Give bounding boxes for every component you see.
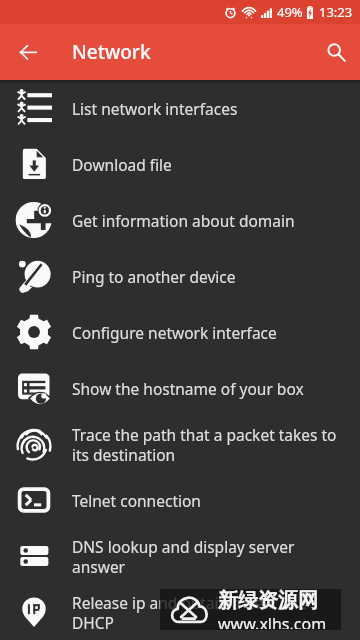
staticText: 13:23 <box>319 3 353 21</box>
staticText: 新绿资源网 <box>218 588 318 613</box>
staticText: Telnet connection <box>72 490 201 511</box>
staticText: 49% <box>277 3 303 21</box>
button[interactable]: Ping to another device <box>0 248 360 304</box>
button[interactable]: Get information about domain <box>0 192 360 248</box>
button[interactable]: Telnet connection <box>0 472 360 528</box>
button[interactable]: Search <box>312 28 360 76</box>
staticText: www.xlhs.com <box>218 613 327 629</box>
button[interactable]: Trace the path that a packet takes to it… <box>0 416 360 472</box>
button[interactable]: Release ip and obtain a new one DHCP <box>0 584 360 640</box>
button[interactable]: DNS lookup and display server answer <box>0 528 360 584</box>
staticText: Network <box>72 39 151 65</box>
button[interactable]: Download file <box>0 136 360 192</box>
staticText: Configure network interface <box>72 322 277 343</box>
staticText: Download file <box>72 154 172 175</box>
staticText: Trace the path that a packet takes to it… <box>72 424 344 465</box>
button[interactable]: Configure network interface <box>0 304 360 360</box>
staticText: Release ip and obtain a new one DHCP <box>72 592 344 633</box>
button[interactable]: Back <box>4 28 52 76</box>
staticText: Ping to another device <box>72 266 236 287</box>
button[interactable]: Show the hostname of your box <box>0 360 360 416</box>
button[interactable]: List network interfaces <box>0 80 360 136</box>
staticText: DNS lookup and display server answer <box>72 536 344 577</box>
staticText: Get information about domain <box>72 210 295 231</box>
staticText: Show the hostname of your box <box>72 378 304 399</box>
staticText: List network interfaces <box>72 98 238 119</box>
